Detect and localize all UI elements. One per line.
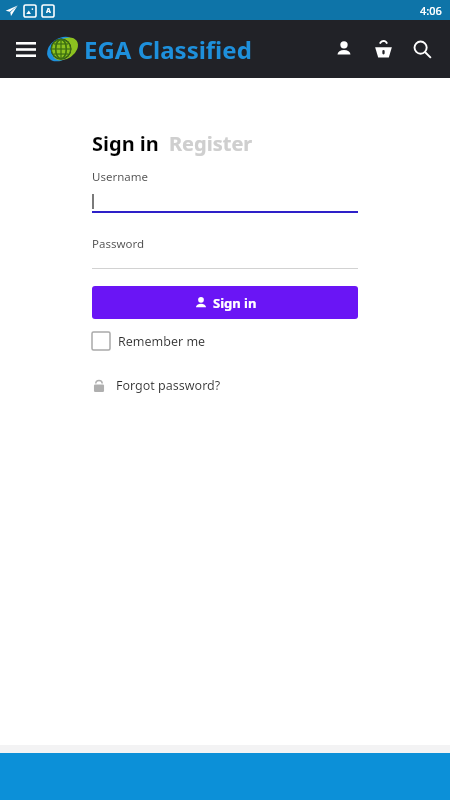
staticText: Sign in [213,294,257,312]
button[interactable]: Account [326,31,362,67]
button[interactable]: Search [404,31,440,67]
staticText: 4:06 [420,3,442,18]
button[interactable]: Cart [365,31,401,67]
staticText: Remember me [118,333,206,350]
button[interactable]: Register [169,130,253,157]
staticText: EGA Classified [84,33,252,66]
staticText: Username [92,169,148,185]
button[interactable]: Sign in [92,130,159,157]
button[interactable]: Password [92,236,358,269]
button[interactable]: Forgot password? [92,377,221,394]
button[interactable]: Sign in [92,286,358,319]
button[interactable]: Username [92,169,358,213]
button[interactable]: EGA Classified [42,30,252,68]
staticText: Forgot password? [116,377,221,394]
staticText: Password [92,236,145,252]
staticText: A [46,6,51,16]
button[interactable]: Remember me [92,332,206,350]
button[interactable]: Open navigation menu [8,31,44,67]
